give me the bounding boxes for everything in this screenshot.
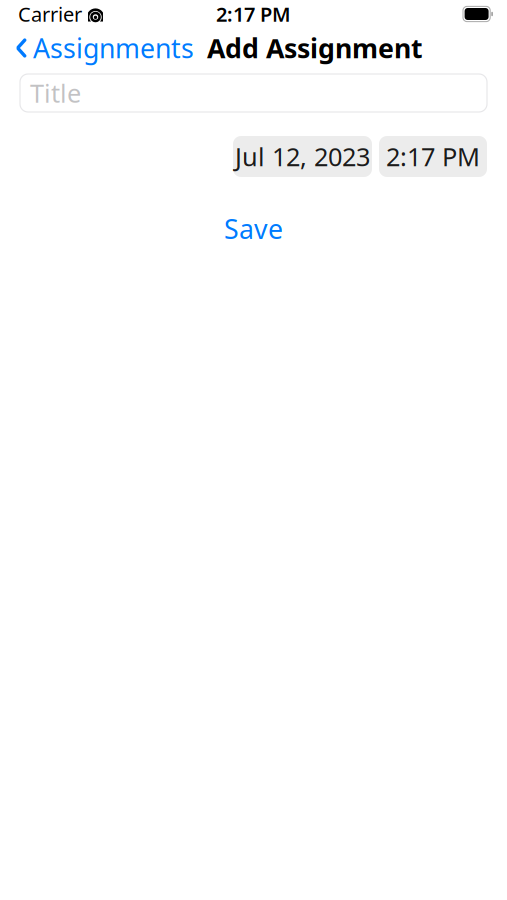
staticText: Title [30,76,81,110]
staticText: Save [224,211,283,246]
staticText: 2:17 PM [216,1,291,27]
button[interactable]: Assignments [0,24,194,72]
staticText: Carrier [18,1,82,27]
staticText: 2:17 PM [386,140,480,173]
button[interactable]: Save [208,207,299,250]
button[interactable]: Jul 12, 2023 [233,136,372,177]
staticText: Assignments [33,30,194,66]
staticText: Add Assignment [207,30,423,66]
staticText: Jul 12, 2023 [235,140,370,173]
button[interactable]: 2:17 PM [379,136,487,177]
